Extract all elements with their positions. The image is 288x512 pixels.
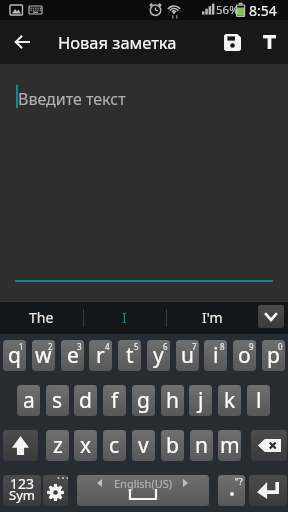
button[interactable]: n (190, 430, 213, 461)
staticText: u (181, 341, 194, 370)
staticText: n (195, 431, 208, 460)
button[interactable]: Space (77, 475, 209, 506)
button[interactable]: Text formatting (250, 20, 288, 64)
staticText: r (96, 341, 105, 370)
staticText: v (138, 431, 149, 460)
staticText: 3 (77, 341, 82, 352)
button[interactable]: q (3, 340, 26, 371)
button[interactable]: o (233, 340, 256, 371)
staticText: 0 (278, 341, 283, 352)
staticText: 4 (105, 341, 110, 352)
staticText: g (137, 386, 150, 415)
staticText: j (198, 386, 204, 415)
button[interactable]: More suggestions (258, 305, 284, 328)
button[interactable]: z (46, 430, 69, 461)
button[interactable]: a (17, 385, 40, 416)
staticText: p (267, 341, 280, 370)
button[interactable]: Punctuation (218, 475, 245, 506)
button[interactable]: p (262, 340, 285, 371)
staticText: Введите текст (18, 88, 126, 110)
staticText: 123 (10, 475, 35, 493)
staticText: o (238, 341, 251, 370)
staticText: 5 (134, 341, 139, 352)
staticText: t (126, 341, 134, 370)
button[interactable]: I'm (167, 301, 258, 334)
staticText: a (23, 386, 35, 415)
staticText: 6 (163, 341, 168, 352)
button[interactable]: x (74, 430, 97, 461)
staticText: 7 (192, 341, 197, 352)
staticText: k (224, 386, 236, 415)
button[interactable]: d (74, 385, 97, 416)
staticText: w (35, 341, 52, 370)
staticText: f (111, 386, 119, 415)
button[interactable]: Shift (3, 430, 38, 461)
button[interactable]: f (103, 385, 126, 416)
staticText: 56% (216, 2, 239, 18)
button[interactable]: Enter (249, 475, 287, 506)
button[interactable]: k (218, 385, 241, 416)
staticText: z (53, 431, 63, 460)
staticText: q (8, 341, 21, 370)
staticText: 9 (249, 341, 254, 352)
button[interactable]: e (61, 340, 84, 371)
staticText: x (80, 431, 92, 460)
button[interactable]: l (247, 385, 270, 416)
staticText: d (79, 386, 92, 415)
button[interactable]: b (161, 430, 184, 461)
staticText: I'm (202, 308, 223, 327)
button[interactable]: m (218, 430, 241, 461)
staticText: Новая заметка (58, 31, 177, 53)
button[interactable]: Settings (43, 475, 68, 506)
button[interactable]: j (189, 385, 212, 416)
staticText: b (166, 431, 179, 460)
button[interactable]: c (103, 430, 126, 461)
staticText: 8:54 (249, 1, 277, 20)
button[interactable]: t (118, 340, 141, 371)
button[interactable]: h (161, 385, 184, 416)
staticText: 8 (220, 341, 225, 352)
button[interactable]: The (0, 301, 83, 334)
button[interactable]: v (132, 430, 155, 461)
staticText: y (153, 341, 164, 370)
staticText: 2 (48, 341, 53, 352)
staticText: Sym (9, 486, 35, 504)
staticText: m (220, 431, 240, 460)
button[interactable]: r (89, 340, 112, 371)
button[interactable]: Backspace (251, 430, 287, 461)
button[interactable]: Back (0, 20, 44, 64)
staticText: i (213, 341, 219, 370)
button[interactable]: Symbols (3, 475, 41, 506)
staticText: c (109, 431, 120, 460)
button[interactable]: w (32, 340, 55, 371)
staticText: l (256, 386, 262, 415)
staticText: e (67, 341, 79, 370)
button[interactable]: g (132, 385, 155, 416)
button[interactable]: i (204, 340, 227, 371)
button[interactable]: y (147, 340, 170, 371)
staticText: The (29, 308, 54, 327)
staticText: "? (235, 475, 243, 487)
staticText: English(US) (114, 476, 173, 491)
staticText: h (166, 386, 179, 415)
staticText: 1 (19, 341, 24, 352)
button[interactable]: Save (208, 20, 250, 64)
button[interactable]: s (46, 385, 69, 416)
button[interactable]: I (83, 301, 166, 334)
staticText: s (52, 386, 63, 415)
button[interactable]: u (176, 340, 199, 371)
staticText: I (122, 308, 127, 327)
